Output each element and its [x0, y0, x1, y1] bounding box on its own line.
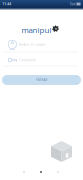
staticText: manipul — [21, 25, 51, 35]
staticText: ENTRAR — [35, 78, 47, 82]
staticText: Sat — [70, 2, 75, 6]
staticText: Contraseña — [19, 58, 36, 62]
button[interactable]: ENTRAR — [2, 75, 81, 85]
staticText: 11:44 — [2, 2, 11, 6]
staticText: Nombre de usuario — [18, 43, 45, 46]
